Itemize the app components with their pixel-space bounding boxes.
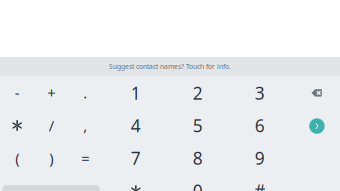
button[interactable]: ) <box>34 142 68 174</box>
button[interactable]: 2 <box>167 77 229 109</box>
button[interactable]: 3 <box>229 77 291 109</box>
button[interactable]: ( <box>0 142 34 174</box>
button[interactable]: 7 <box>105 142 167 174</box>
button[interactable]: 1 <box>105 77 167 109</box>
staticText: 3 <box>255 81 265 104</box>
staticText: ( <box>15 148 19 168</box>
staticText: 6 <box>255 114 265 137</box>
staticText: ) <box>49 148 53 168</box>
button[interactable]: Space <box>0 174 105 191</box>
staticText: 1 <box>131 81 141 104</box>
button[interactable]: , <box>68 109 102 142</box>
staticText: . <box>83 83 87 103</box>
button[interactable]: 0 <box>167 174 229 191</box>
button[interactable]: - <box>0 77 34 109</box>
staticText: + <box>47 83 55 103</box>
button[interactable]: + <box>34 77 68 109</box>
button[interactable]: Suggest contact names? Touch for info. <box>0 57 340 76</box>
staticText: - <box>15 83 20 103</box>
button[interactable]: / <box>34 109 68 142</box>
staticText: , <box>83 116 87 135</box>
staticText: 5 <box>193 114 203 137</box>
staticText: Suggest contact names? Touch for info. <box>109 62 231 71</box>
button[interactable]: = <box>68 142 102 174</box>
staticText: 7 <box>131 147 141 170</box>
button[interactable]: # <box>229 174 291 191</box>
staticText: 8 <box>193 147 203 170</box>
staticText: 4 <box>131 114 141 137</box>
button[interactable]: . <box>68 77 102 109</box>
button[interactable]: Delete <box>291 77 340 109</box>
staticText: 0 <box>193 179 203 191</box>
staticText: / <box>49 116 54 135</box>
staticText: 9 <box>255 147 265 170</box>
button[interactable]: 4 <box>105 109 167 142</box>
staticText: # <box>254 179 265 191</box>
button[interactable]: Asterisk <box>0 109 34 142</box>
button[interactable]: Asterisk <box>105 174 167 191</box>
button[interactable]: 8 <box>167 142 229 174</box>
staticText: = <box>81 148 89 168</box>
button[interactable]: 6 <box>229 109 291 142</box>
button[interactable]: Enter <box>291 109 340 142</box>
button[interactable]: 5 <box>167 109 229 142</box>
button[interactable]: 9 <box>229 142 291 174</box>
staticText: 2 <box>193 81 203 104</box>
